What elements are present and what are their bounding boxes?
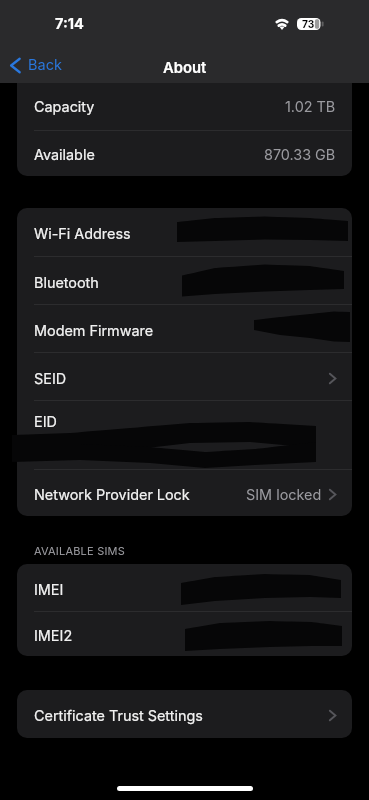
staticText: Back [28, 56, 62, 74]
staticText: SIM locked [246, 486, 322, 503]
staticText: IMEI [34, 581, 64, 598]
button[interactable]: IMEI2 [17, 612, 352, 656]
other: Battery 73 percent [297, 18, 325, 30]
button[interactable]: Available [17, 131, 352, 176]
staticText: 870.33 GB [264, 146, 336, 163]
staticText: 7:14 [55, 15, 84, 33]
staticText: Capacity [34, 98, 95, 115]
staticText: Bluetooth [34, 274, 99, 291]
staticText: 73 [302, 18, 315, 30]
staticText: Network Provider Lock [34, 486, 190, 503]
button[interactable]: Back [10, 50, 62, 80]
other: Wi-Fi [274, 18, 290, 30]
button[interactable]: Wi-Fi Address [17, 208, 352, 257]
button[interactable]: EID [17, 401, 352, 470]
button[interactable]: Network Provider Lock [17, 470, 352, 516]
button[interactable]: Bluetooth [17, 257, 352, 305]
button[interactable]: Modem Firmware [17, 305, 352, 353]
staticText: SEID [34, 370, 67, 387]
button[interactable]: Certificate Trust Settings [17, 690, 352, 738]
button[interactable]: IMEI [17, 564, 352, 612]
staticText: 1.02 TB [285, 98, 336, 115]
staticText: IMEI2 [34, 627, 73, 644]
staticText: Modem Firmware [34, 322, 154, 339]
button[interactable]: Capacity [17, 83, 352, 131]
staticText: EID [34, 413, 57, 430]
button[interactable]: SEID [17, 353, 352, 401]
staticText: Available [34, 146, 95, 163]
staticText: Certificate Trust Settings [34, 707, 203, 724]
staticText: AVAILABLE SIMS [34, 544, 125, 557]
staticText: Wi-Fi Address [34, 225, 131, 242]
staticText: About [163, 59, 207, 77]
